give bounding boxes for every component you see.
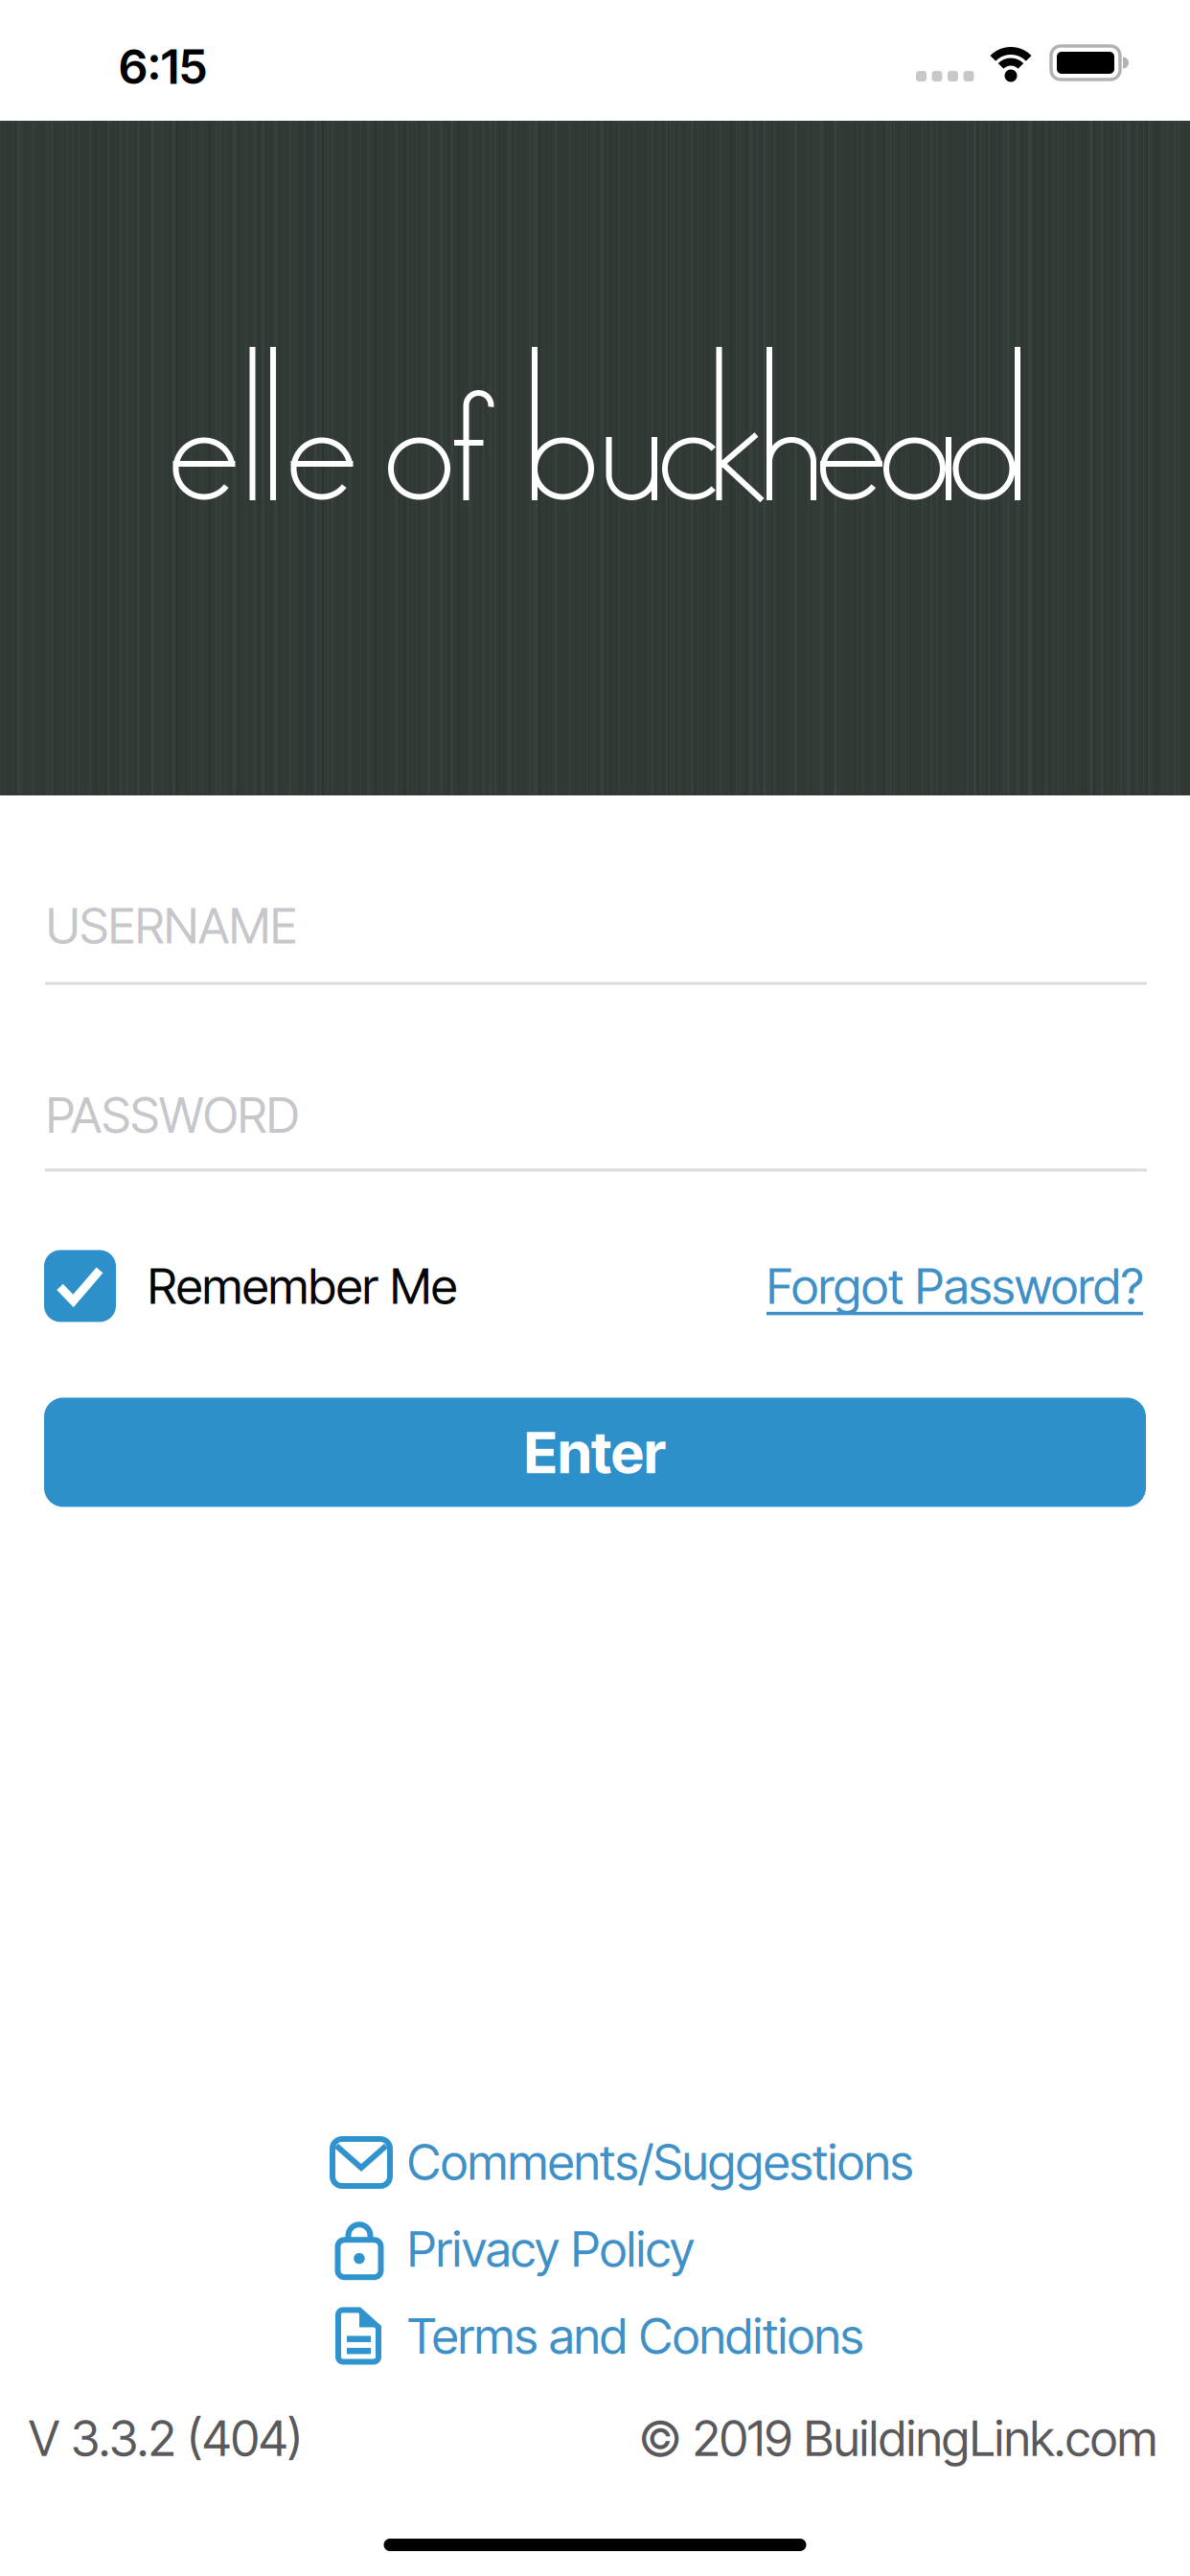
- staticText: Privacy Policy: [407, 2219, 695, 2279]
- staticText: 6:15: [119, 38, 207, 95]
- staticText: PASSWORD: [46, 1086, 299, 1145]
- staticText: © 2019 BuildingLink.com: [639, 2409, 1157, 2468]
- staticText: USERNAME: [46, 896, 297, 955]
- button[interactable]: Forgot Password?: [767, 1256, 1143, 1316]
- staticText: Terms and Conditions: [407, 2306, 863, 2365]
- button[interactable]: Comments/Suggestions: [332, 2132, 913, 2192]
- button[interactable]: Privacy Policy: [332, 2219, 695, 2279]
- staticText: Enter: [524, 1417, 666, 1487]
- button[interactable]: Enter: [44, 1398, 1146, 1507]
- staticText: V 3.3.2 (404): [29, 2409, 303, 2468]
- button[interactable]: Terms and Conditions: [332, 2306, 863, 2365]
- button[interactable]: Remember Me: [44, 1250, 457, 1322]
- staticText: Remember Me: [148, 1256, 457, 1316]
- staticText: Comments/Suggestions: [407, 2132, 913, 2192]
- staticText: Forgot Password?: [767, 1256, 1143, 1316]
